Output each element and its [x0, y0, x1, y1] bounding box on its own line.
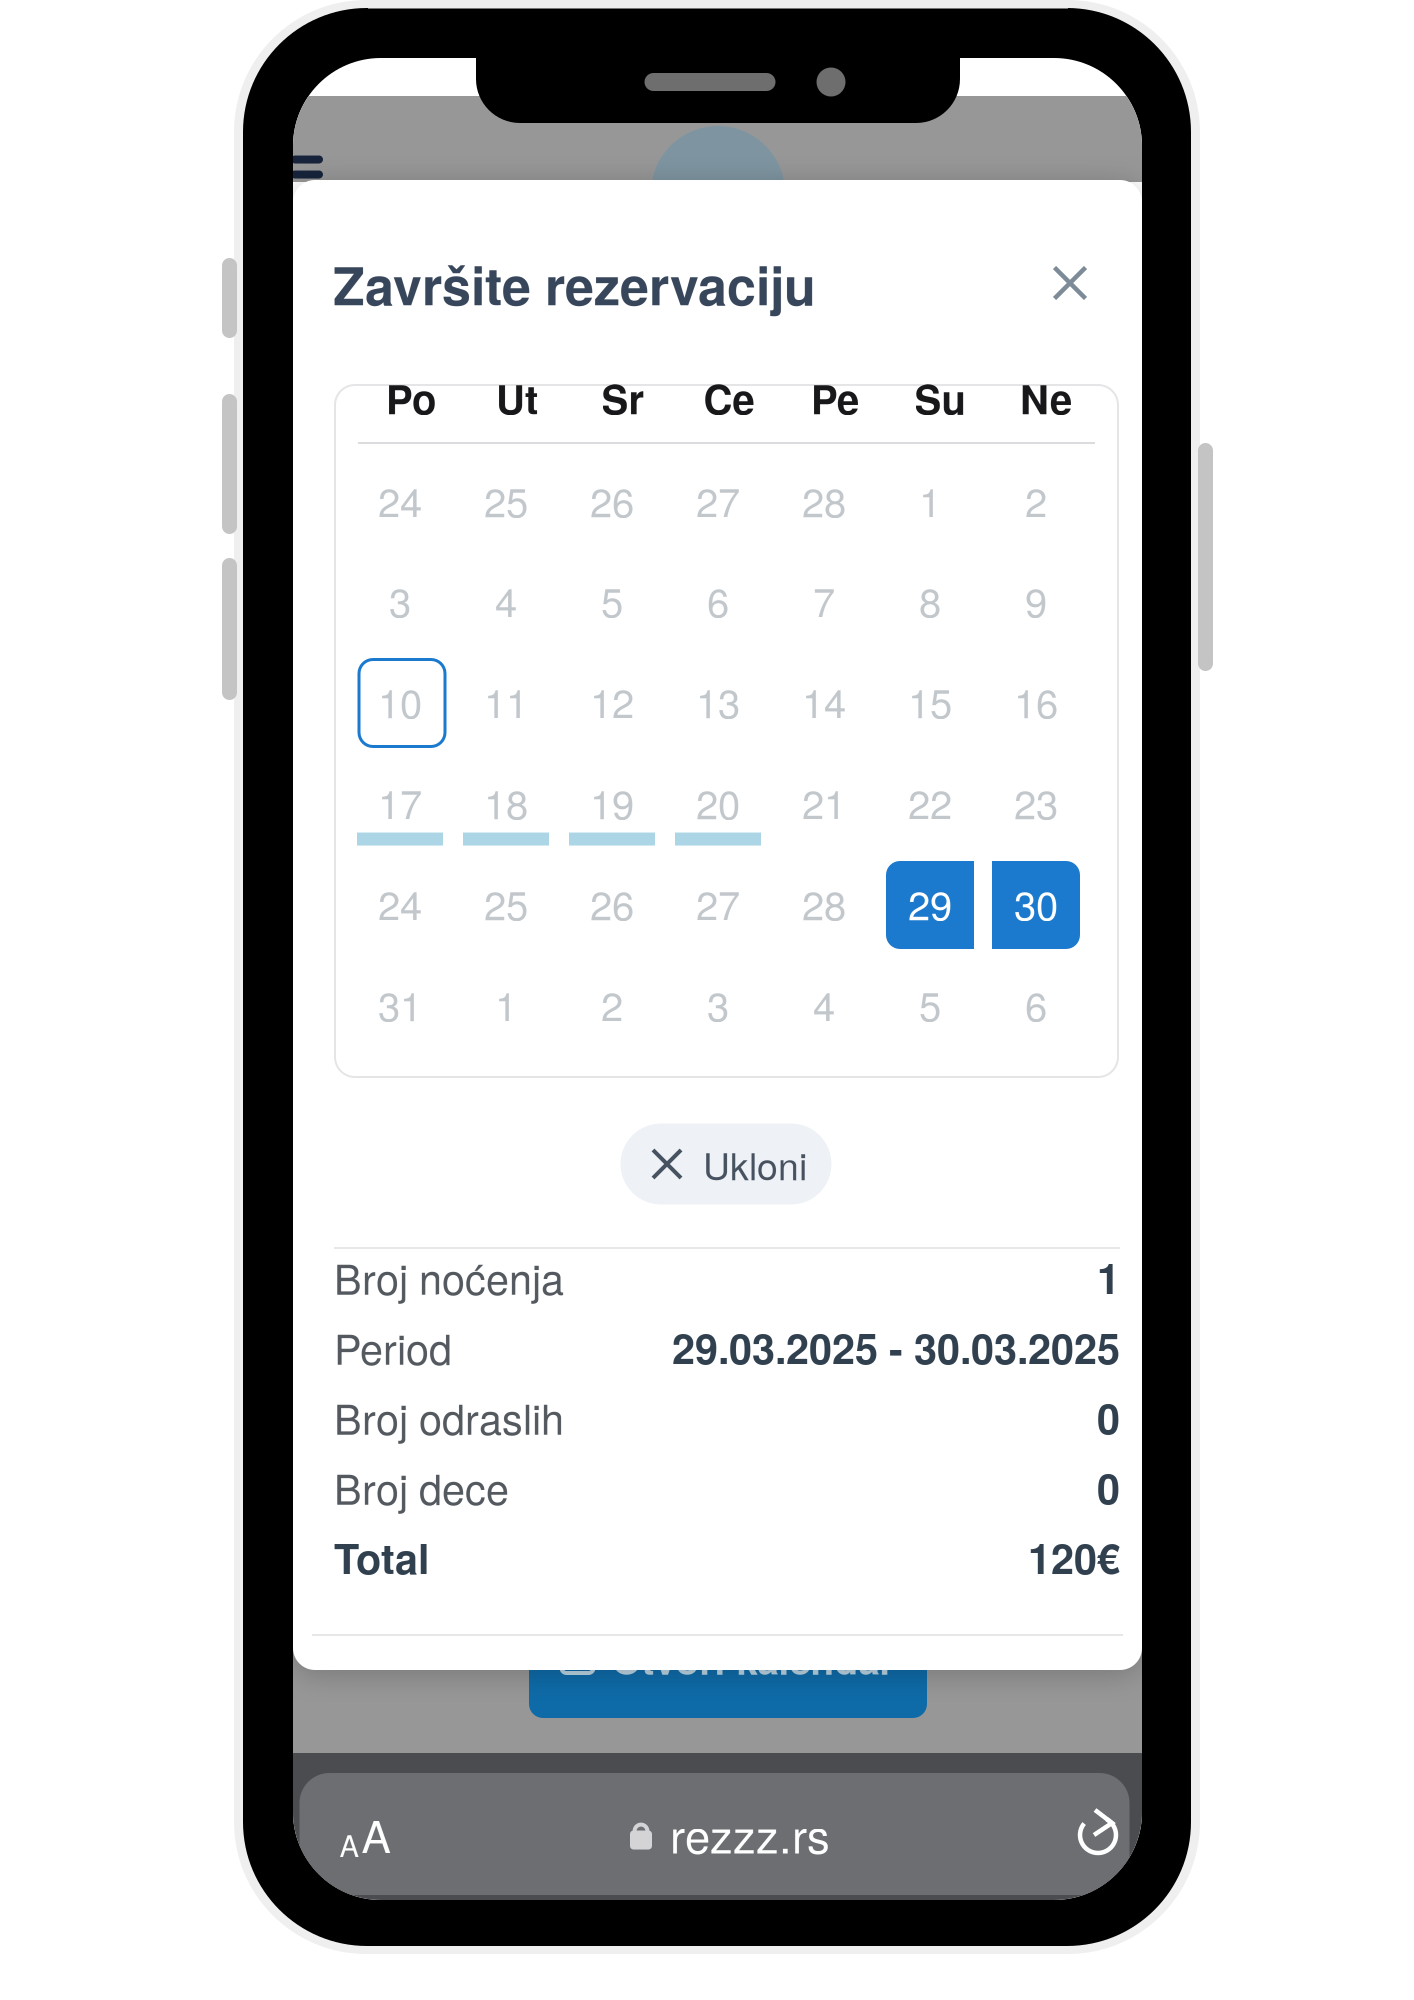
staticText: 15: [908, 672, 952, 730]
button[interactable]: 13: [672, 655, 764, 747]
button[interactable]: 15: [884, 655, 976, 747]
button[interactable]: 11: [460, 655, 552, 747]
button[interactable]: 8: [884, 554, 976, 646]
button[interactable]: 1: [884, 454, 976, 546]
staticText: Period: [334, 1317, 452, 1377]
staticText: 4: [813, 975, 835, 1033]
staticText: 120€: [1028, 1527, 1120, 1587]
staticText: 27: [696, 471, 740, 529]
button[interactable]: Ukloni: [620, 1123, 831, 1204]
staticText: 3: [707, 975, 729, 1033]
button[interactable]: 28: [778, 454, 870, 546]
button[interactable]: Close: [1034, 247, 1106, 319]
button[interactable]: 6: [990, 958, 1082, 1050]
staticText: Ce: [703, 369, 754, 427]
button[interactable]: Text size: [305, 1784, 425, 1884]
staticText: 9: [1025, 571, 1047, 629]
staticText: Ukloni: [703, 1137, 807, 1191]
staticText: 2: [1025, 471, 1047, 529]
staticText: 1: [1097, 1247, 1120, 1307]
button[interactable]: 3: [672, 958, 764, 1050]
staticText: 24: [378, 874, 422, 932]
button[interactable]: 31: [354, 958, 446, 1050]
staticText: 1: [495, 975, 517, 1033]
staticText: Sr: [601, 369, 644, 427]
button[interactable]: 28: [778, 857, 870, 949]
button[interactable]: 6: [672, 554, 764, 646]
staticText: 22: [908, 773, 952, 831]
button[interactable]: 18: [460, 756, 552, 848]
staticText: 0: [1097, 1387, 1120, 1447]
staticText: 14: [802, 672, 846, 730]
button[interactable]: 23: [990, 756, 1082, 848]
button[interactable]: 5: [884, 958, 976, 1050]
staticText: 28: [802, 471, 846, 529]
button[interactable]: 4: [778, 958, 870, 1050]
staticText: 7: [813, 571, 835, 629]
staticText: Po: [386, 369, 436, 427]
staticText: Ut: [496, 369, 538, 427]
button[interactable]: 29: [884, 857, 976, 949]
staticText: Broj odraslih: [334, 1387, 564, 1447]
button[interactable]: 12: [566, 655, 658, 747]
button[interactable]: 2: [566, 958, 658, 1050]
staticText: Ne: [1020, 369, 1072, 427]
button[interactable]: 27: [672, 857, 764, 949]
button[interactable]: 3: [354, 554, 446, 646]
staticText: 23: [1014, 773, 1058, 831]
staticText: Broj dece: [334, 1457, 509, 1517]
staticText: Broj noćenja: [334, 1247, 564, 1307]
staticText: 6: [707, 571, 729, 629]
button[interactable]: 7: [778, 554, 870, 646]
button[interactable]: 30: [990, 857, 1082, 949]
button[interactable]: 19: [566, 756, 658, 848]
staticText: 27: [696, 874, 740, 932]
button[interactable]: 9: [990, 554, 1082, 646]
staticText: Otvori kalendar: [611, 1631, 894, 1687]
button[interactable]: 1: [460, 958, 552, 1050]
button[interactable]: 25: [460, 857, 552, 949]
staticText: 24: [378, 471, 422, 529]
button[interactable]: 24: [354, 454, 446, 546]
button[interactable]: 2: [990, 454, 1082, 546]
staticText: Su: [914, 369, 965, 427]
staticText: 26: [590, 874, 634, 932]
button[interactable]: 25: [460, 454, 552, 546]
staticText: 30: [1014, 874, 1058, 932]
button[interactable]: 14: [778, 655, 870, 747]
button[interactable]: 20: [672, 756, 764, 848]
staticText: 16: [1014, 672, 1058, 730]
staticText: 8: [919, 571, 941, 629]
staticText: 5: [601, 571, 623, 629]
button[interactable]: 17: [354, 756, 446, 848]
staticText: 10: [378, 672, 422, 730]
staticText: 6: [1025, 975, 1047, 1033]
staticText: A: [361, 1802, 390, 1865]
button[interactable]: 22: [884, 756, 976, 848]
button[interactable]: 5: [566, 554, 658, 646]
staticText: 13: [696, 672, 740, 730]
button[interactable]: 26: [566, 454, 658, 546]
staticText: 11: [484, 672, 528, 730]
button[interactable]: 27: [672, 454, 764, 546]
button[interactable]: rezzz.rs: [630, 1784, 830, 1884]
button[interactable]: 26: [566, 857, 658, 949]
staticText: 19: [590, 773, 634, 831]
button[interactable]: 10: [354, 655, 446, 747]
staticText: 12: [590, 672, 634, 730]
staticText: 25: [484, 471, 528, 529]
staticText: 26: [590, 471, 634, 529]
staticText: A: [339, 1823, 359, 1865]
staticText: Završite rezervaciju: [333, 247, 816, 321]
staticText: rezzz.rs: [670, 1801, 830, 1866]
button[interactable]: 21: [778, 756, 870, 848]
staticText: 5: [919, 975, 941, 1033]
button[interactable]: 4: [460, 554, 552, 646]
button[interactable]: 24: [354, 857, 446, 949]
button[interactable]: Reload: [1048, 1782, 1148, 1882]
staticText: 29.03.2025 - 30.03.2025: [672, 1317, 1120, 1377]
staticText: 4: [495, 571, 517, 629]
button[interactable]: Završite rezervaciju: [333, 251, 853, 317]
button[interactable]: 16: [990, 655, 1082, 747]
staticText: Total: [334, 1527, 429, 1587]
